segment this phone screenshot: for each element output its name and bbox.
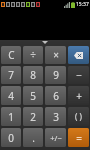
staticText: 4 <box>8 89 14 103</box>
staticText: ( ) <box>75 111 82 122</box>
button[interactable]: 7 <box>1 66 21 84</box>
staticText: = <box>76 131 82 145</box>
staticText: +/− <box>50 133 62 143</box>
staticText: 0 <box>8 131 14 145</box>
staticText: 9 <box>53 68 59 82</box>
button[interactable]: 2 <box>23 107 43 126</box>
button[interactable]: ÷ <box>23 46 43 64</box>
staticText: 7 <box>8 68 14 82</box>
staticText: − <box>76 68 82 82</box>
button[interactable]: 5 <box>23 86 43 105</box>
button[interactable]: 8 <box>23 66 43 84</box>
staticText: × <box>53 48 59 62</box>
staticText: 5 <box>30 89 36 103</box>
button[interactable]: 4 <box>1 86 21 105</box>
button[interactable]: 1 <box>1 107 21 126</box>
button[interactable]: 0 <box>1 128 21 147</box>
button[interactable]: +/− <box>45 128 66 147</box>
staticText: + <box>76 89 82 103</box>
button[interactable]: 6 <box>45 86 66 105</box>
staticText: 3 <box>53 110 59 124</box>
button[interactable]: Delete <box>68 46 89 64</box>
button[interactable]: 9 <box>45 66 66 84</box>
staticText: 2 <box>30 110 36 124</box>
staticText: ÷ <box>30 48 36 62</box>
button[interactable]: . <box>23 128 43 147</box>
button[interactable]: 3 <box>45 107 66 126</box>
button[interactable]: × <box>45 46 66 64</box>
button[interactable]: C <box>1 46 21 64</box>
button[interactable]: ( ) <box>68 107 89 126</box>
staticText: C <box>8 48 15 62</box>
staticText: 8 <box>30 68 36 82</box>
button[interactable]: + <box>68 86 89 105</box>
staticText: 6 <box>53 89 59 103</box>
staticText: 1 <box>8 110 14 124</box>
staticText: . <box>32 131 35 145</box>
staticText: 15:37 <box>76 1 89 8</box>
button[interactable]: = <box>68 128 89 147</box>
button[interactable]: − <box>68 66 89 84</box>
